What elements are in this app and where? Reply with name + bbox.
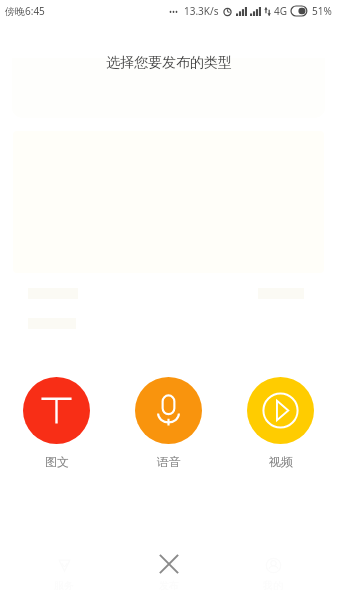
staticText: 51% xyxy=(312,4,332,18)
staticText: 傍晚6:45 xyxy=(5,4,45,18)
button[interactable]: 发布 xyxy=(129,556,209,592)
button[interactable]: 关闭 xyxy=(147,542,191,586)
staticText: 选择您要发布的类型 xyxy=(106,54,232,72)
button[interactable]: 图文 xyxy=(23,377,90,469)
staticText: 4G xyxy=(274,4,287,18)
button[interactable]: 语音 xyxy=(135,377,202,469)
staticText: 13.3K/s xyxy=(184,4,219,18)
button[interactable]: 视频 xyxy=(247,377,314,469)
other: 图文 xyxy=(23,377,90,444)
other: 视频 xyxy=(247,377,314,444)
staticText: 图文 xyxy=(45,454,69,469)
staticText: ••• xyxy=(169,6,179,17)
staticText: 语音 xyxy=(157,454,181,469)
other: 语音 xyxy=(135,377,202,444)
staticText: 视频 xyxy=(269,454,293,469)
